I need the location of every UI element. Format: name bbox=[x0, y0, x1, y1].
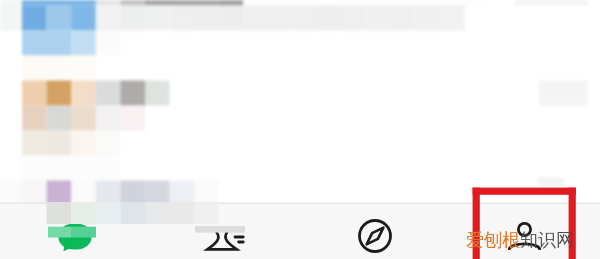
button[interactable] bbox=[0, 0, 600, 259]
button[interactable]: Chats bbox=[0, 203, 150, 259]
button[interactable]: Contacts bbox=[150, 203, 300, 259]
staticText: 知识网 bbox=[520, 229, 574, 252]
button[interactable]: Discover bbox=[300, 203, 450, 259]
staticText: 爱刨根 bbox=[466, 229, 520, 252]
button[interactable]: Me bbox=[450, 203, 600, 259]
